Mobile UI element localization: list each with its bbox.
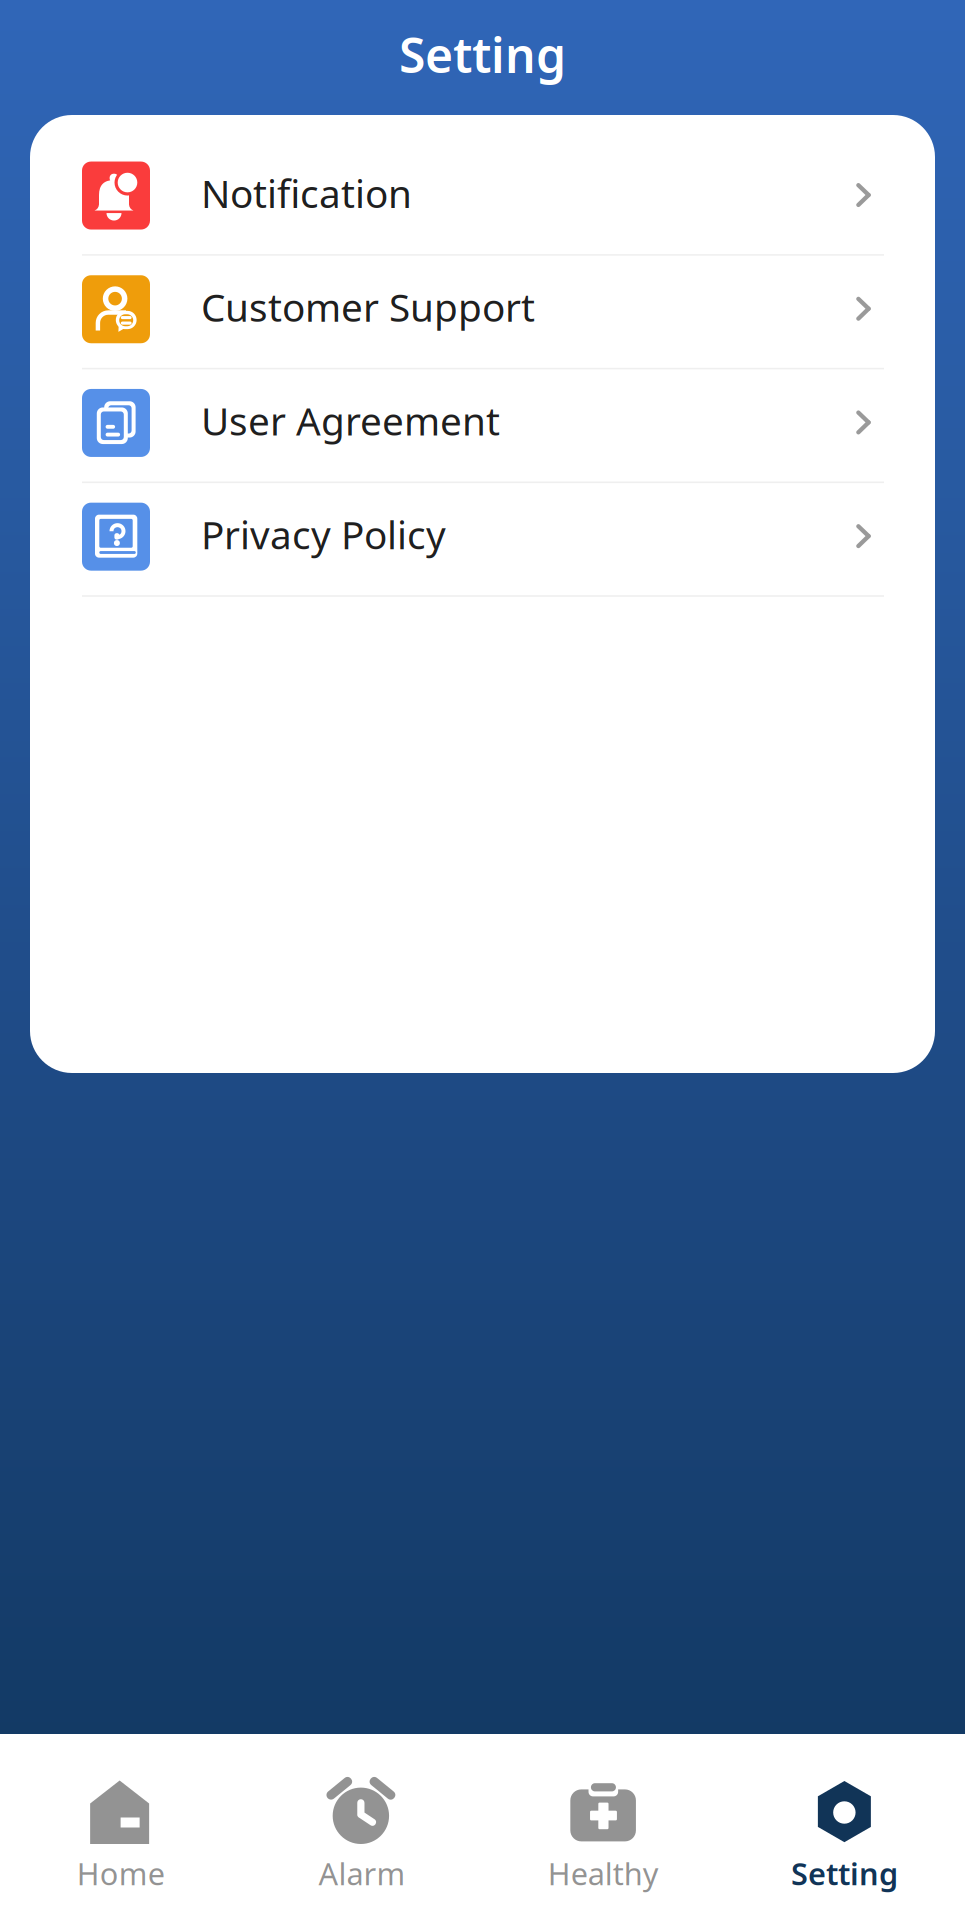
button[interactable]: Alarm [241, 1734, 482, 1920]
button[interactable]: Privacy Policy [30, 483, 935, 597]
staticText: Setting [791, 1853, 898, 1894]
button[interactable]: Home [0, 1734, 241, 1920]
button[interactable]: User Agreement [30, 369, 935, 483]
button[interactable]: Healthy [482, 1734, 724, 1920]
staticText: Setting [399, 23, 566, 86]
staticText: Healthy [548, 1853, 659, 1894]
staticText: User Agreement [201, 395, 500, 446]
staticText: Privacy Policy [201, 508, 446, 560]
staticText: Notification [201, 167, 412, 219]
staticText: Home [77, 1853, 165, 1894]
staticText: Customer Support [201, 281, 535, 332]
button[interactable]: Notification [30, 142, 935, 256]
button[interactable]: Setting [724, 1734, 965, 1920]
button[interactable]: Customer Support [30, 256, 935, 369]
staticText: Alarm [318, 1853, 405, 1894]
